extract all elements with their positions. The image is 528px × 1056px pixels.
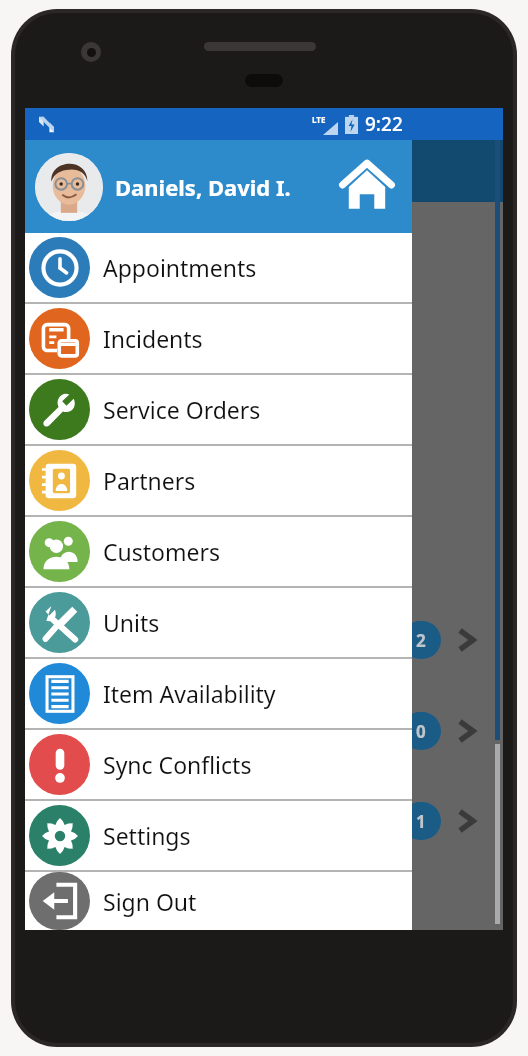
button[interactable]: Units xyxy=(25,588,412,657)
button[interactable]: Partners xyxy=(25,446,412,515)
button[interactable]: Sync Conflicts xyxy=(25,730,412,799)
staticText: Incidents xyxy=(103,323,203,354)
staticText: Partners xyxy=(103,465,196,496)
staticText: 9:22 xyxy=(365,111,403,137)
staticText: LTE xyxy=(312,114,326,125)
button[interactable]: Service Orders xyxy=(25,375,412,444)
staticText: Units xyxy=(103,607,160,638)
staticText: Appointments xyxy=(103,252,257,283)
button[interactable]: Home xyxy=(334,154,400,220)
staticText: Customers xyxy=(103,536,220,567)
button[interactable]: Appointments xyxy=(25,233,412,302)
button[interactable]: Customers xyxy=(25,517,412,586)
staticText: 2 xyxy=(416,629,426,652)
button[interactable]: Sign Out xyxy=(25,872,412,930)
staticText: 1 xyxy=(416,810,426,833)
button[interactable]: Item Availability xyxy=(25,659,412,728)
staticText: Sign Out xyxy=(103,886,197,917)
button[interactable]: Settings xyxy=(25,801,412,870)
staticText: Settings xyxy=(103,820,191,851)
staticText: Daniels, David I. xyxy=(115,172,291,202)
staticText: 0 xyxy=(416,720,426,743)
staticText: Item Availability xyxy=(103,678,276,709)
button[interactable]: Daniels, David I. xyxy=(25,140,412,233)
staticText: Service Orders xyxy=(103,394,261,425)
button[interactable]: Incidents xyxy=(25,304,412,373)
staticText: Sync Conflicts xyxy=(103,749,252,780)
